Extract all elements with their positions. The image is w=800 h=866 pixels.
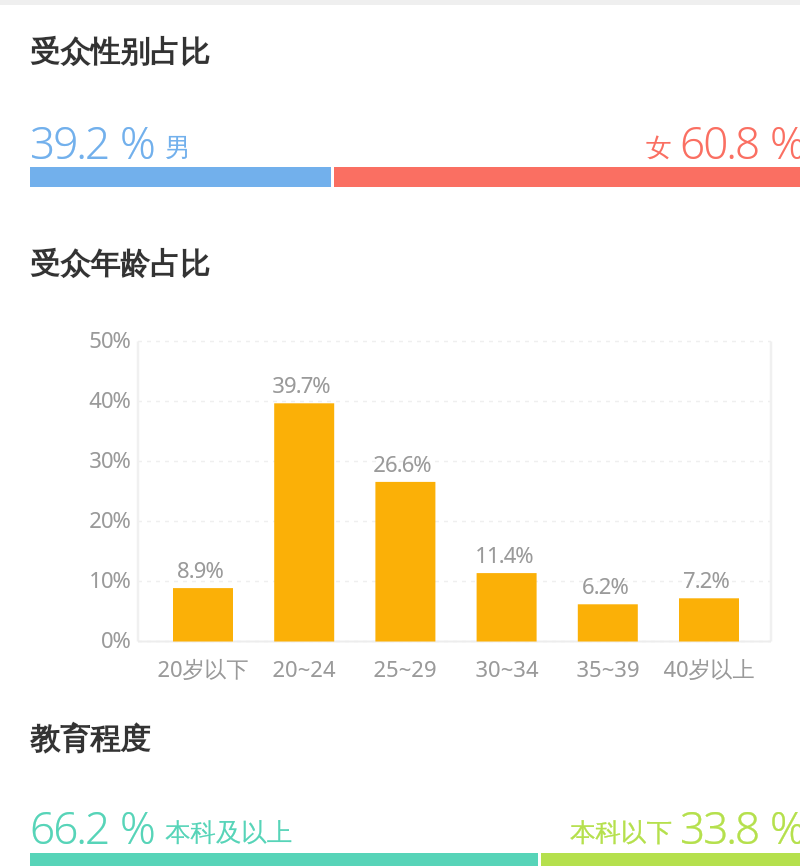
staticText: 40% [40,384,130,414]
staticText: 0% [40,624,130,654]
staticText: 30~34 [437,653,577,683]
button[interactable]: 受众性别占比 男 39.2% 女 60.8% [30,112,800,172]
staticText: 11.4% [444,539,564,569]
staticText: 50% [40,324,130,354]
staticText: % [770,797,800,857]
staticText: % [770,112,800,172]
staticText: 33.8 [680,797,759,857]
staticText: % [120,797,154,857]
button[interactable]: 受众性别占比 [30,33,210,71]
staticText: 66.2 [30,797,109,857]
staticText: 39.2 [30,112,109,172]
staticText: 39.7% [241,369,361,399]
staticText: 20% [40,504,130,534]
staticText: 8.9% [140,554,260,584]
staticText: 教育程度 [30,720,150,758]
staticText: 男 [165,131,191,163]
staticText: % [120,112,154,172]
staticText: 6.2% [545,570,665,600]
staticText: 受众年龄占比 [30,245,210,283]
staticText: 本科及以上 [165,816,293,848]
staticText: 40岁以上 [639,653,779,683]
button[interactable]: 教育程度 本科及以上 66.2% 本科以下 33.8% [30,797,800,857]
staticText: 7.2% [646,564,766,594]
button[interactable]: 受众年龄占比 [30,245,210,283]
staticText: 60.8 [680,112,759,172]
staticText: 20~24 [234,653,374,683]
button[interactable]: 教育程度 [30,720,150,758]
staticText: 10% [40,564,130,594]
staticText: 女 [646,131,672,163]
staticText: 20岁以下 [133,653,273,683]
staticText: 26.6% [342,448,462,478]
staticText: 35~39 [538,653,678,683]
staticText: 25~29 [335,653,475,683]
staticText: 本科以下 [570,816,672,848]
staticText: 30% [40,444,130,474]
staticText: 受众性别占比 [30,33,210,71]
